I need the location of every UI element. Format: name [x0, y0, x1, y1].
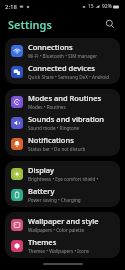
staticText: Settings — [8, 17, 52, 32]
staticText: Notifications — [28, 135, 74, 145]
button[interactable]: Search — [101, 15, 119, 33]
staticText: Modes • Routines — [28, 104, 66, 110]
staticText: Sounds and vibration — [28, 114, 105, 124]
button[interactable]: Sounds and vibration — [5, 112, 120, 133]
staticText: Connections — [28, 42, 73, 52]
button[interactable]: Connections — [5, 40, 120, 61]
staticText: Display — [28, 165, 55, 175]
button[interactable]: Notifications — [5, 133, 120, 154]
button[interactable]: Modes and Routines — [5, 91, 120, 112]
staticText: Wallpapers • Color palette — [28, 227, 84, 233]
button[interactable]: Connected devices — [5, 61, 120, 82]
staticText: Sound mode • Ringtone — [28, 125, 80, 131]
staticText: Modes and Routines — [28, 93, 102, 103]
button[interactable]: Wallpaper and style — [5, 214, 120, 235]
staticText: 15 — [88, 3, 94, 10]
staticText: Themes — [28, 237, 57, 247]
staticText: Connected devices — [28, 63, 95, 73]
staticText: Quick Share • Samsung DeX • Android Auto — [28, 74, 114, 80]
button[interactable]: Display — [5, 163, 120, 184]
staticText: Power saving • Charging — [28, 197, 81, 203]
staticText: 2:18 — [5, 3, 17, 11]
button[interactable]: Battery — [5, 184, 120, 205]
staticText: 92% — [102, 3, 112, 10]
staticText: Wi-Fi • Bluetooth • SIM manager — [28, 53, 98, 59]
staticText: Wallpaper and style — [28, 216, 99, 226]
staticText: Brightness • Eye comfort shield • Naviga… — [28, 176, 114, 182]
staticText: Battery — [28, 186, 55, 196]
staticText: Themes • Wallpapers • Icons — [28, 248, 89, 254]
staticText: Status bar • Do not disturb — [28, 146, 86, 152]
button[interactable]: Themes — [5, 235, 120, 256]
